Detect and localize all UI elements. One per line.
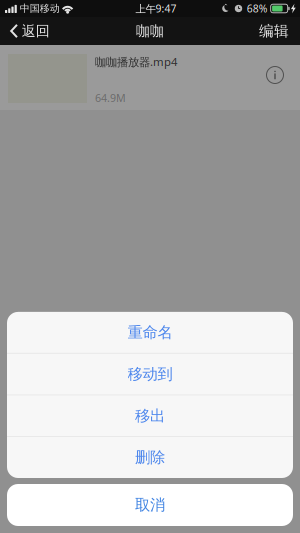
button[interactable]: 移出 [7,395,293,436]
staticText: 删除 [135,448,165,467]
button[interactable]: 返回 [0,17,57,45]
staticText: 64.9M [95,90,126,105]
button[interactable]: 重命名 [7,312,293,353]
staticText: 取消 [135,495,165,515]
staticText: 返回 [22,22,50,40]
button[interactable]: 咖咖播放器.mp4 [0,45,300,110]
staticText: 编辑 [259,22,289,40]
staticText: 重命名 [127,323,172,342]
button[interactable]: 取消 [7,484,293,526]
staticText: 咖咖播放器.mp4 [95,54,177,69]
staticText: 中国移动 [20,2,60,15]
staticText: 上午9:47 [135,1,176,16]
staticText: 移动到 [127,364,172,384]
staticText: 咖咖 [136,22,164,40]
button[interactable]: 移动到 [7,354,293,395]
staticText: 68% [247,1,268,16]
button[interactable]: 删除 [7,437,293,478]
button[interactable]: 编辑 [248,17,300,45]
staticText: 移出 [135,406,165,425]
